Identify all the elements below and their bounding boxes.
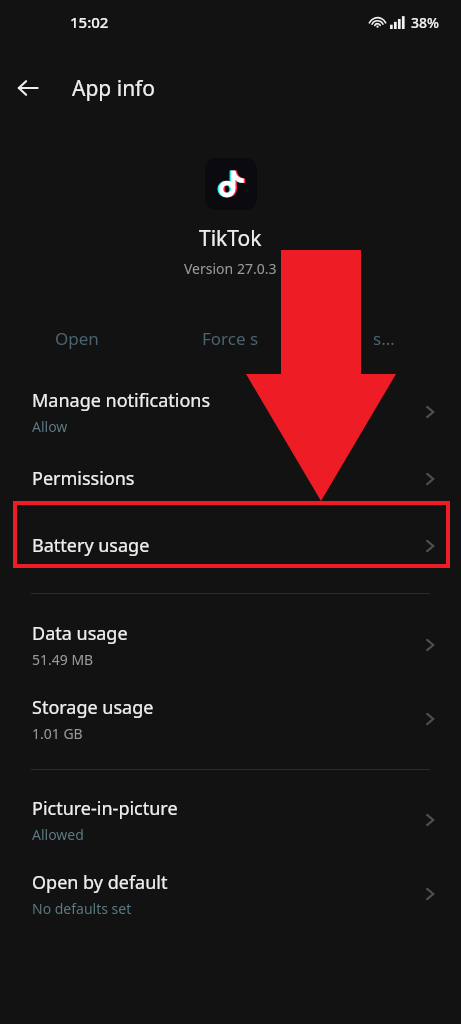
button[interactable]: Open by default xyxy=(0,857,461,931)
staticText: Open by default xyxy=(32,870,168,895)
staticText: No defaults set xyxy=(32,899,132,918)
staticText: 51.49 MB xyxy=(32,650,94,669)
button[interactable]: Permissions xyxy=(0,445,461,512)
staticText: s… xyxy=(373,327,395,350)
staticText: Allow xyxy=(32,417,68,436)
staticText: Open xyxy=(55,327,99,350)
staticText: 1.01 GB xyxy=(32,724,83,743)
staticText: Picture-in-picture xyxy=(32,796,178,821)
button[interactable]: Picture-in-picture xyxy=(0,783,461,857)
staticText: Force s xyxy=(202,327,259,350)
staticText: Data usage xyxy=(32,621,128,646)
staticText: TikTok xyxy=(199,224,262,253)
button[interactable]: Force s xyxy=(153,318,307,358)
button[interactable]: Manage notifications xyxy=(0,378,461,445)
staticText: App info xyxy=(72,74,156,103)
button[interactable]: Open xyxy=(0,318,153,358)
button[interactable]: s… xyxy=(307,318,461,358)
staticText: Version 27.0.3 xyxy=(184,259,277,278)
button[interactable]: Back xyxy=(0,60,56,116)
staticText: Allowed xyxy=(32,825,84,844)
button[interactable]: Data usage xyxy=(0,608,461,682)
button[interactable]: Storage usage xyxy=(0,682,461,756)
staticText: 15:02 xyxy=(70,12,109,32)
button[interactable]: Battery usage xyxy=(0,512,461,579)
staticText: Storage usage xyxy=(32,695,154,720)
staticText: 38% xyxy=(411,13,439,32)
staticText: Manage notifications xyxy=(32,388,211,413)
staticText: Battery usage xyxy=(32,533,150,558)
staticText: Permissions xyxy=(32,466,135,491)
